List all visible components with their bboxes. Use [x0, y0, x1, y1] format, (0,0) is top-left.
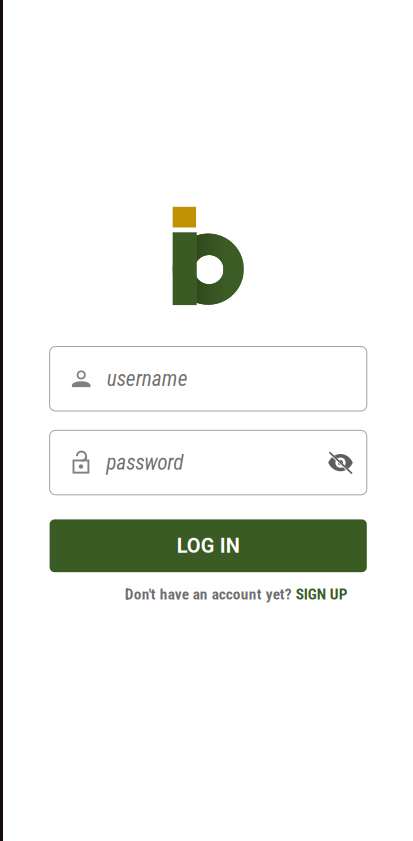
staticText: Don't have an account yet?	[125, 585, 296, 603]
staticText: password	[106, 450, 183, 475]
staticText: username	[107, 366, 188, 391]
button[interactable]: SIGN UP	[296, 585, 348, 603]
staticText: LOG IN	[177, 534, 240, 557]
button[interactable]: Show password	[325, 449, 356, 476]
button[interactable]: LOG IN	[50, 519, 367, 572]
staticText: SIGN UP	[296, 585, 348, 603]
